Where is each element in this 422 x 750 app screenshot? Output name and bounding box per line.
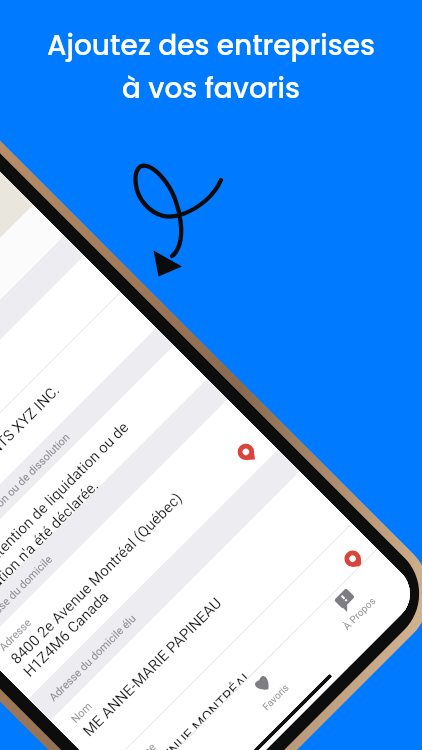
- button[interactable]: Aucune intention de liquidation ou de di…: [0, 338, 225, 622]
- button[interactable]: Nom: [67, 464, 369, 750]
- staticText: Adresse du domicile: [0, 546, 72, 625]
- button[interactable]: Favoris: [228, 625, 339, 736]
- button[interactable]: LES DEVELOPPEMENTS XYZ INC.: [0, 285, 174, 571]
- staticText: LES DEVELOPPEMENTS XYZ INC.: [0, 374, 81, 546]
- staticText: Intention de liquidation ou de dissoluti…: [0, 423, 90, 573]
- staticText: 8400 2e Avenue Montréal (Québec): [24, 482, 203, 661]
- button[interactable]: À Propos: [311, 542, 422, 653]
- staticText: 2E AVENUE MONTRÉAL: [149, 659, 274, 750]
- button[interactable]: Adresse: [120, 517, 406, 750]
- staticText: H1Z4M6 Canada: [37, 581, 129, 674]
- button[interactable]: Nom: [176, 573, 422, 750]
- staticText: Adresse du domicile élu: [64, 605, 156, 697]
- staticText: Nom: [86, 693, 112, 719]
- button[interactable]: Recherche: [145, 709, 255, 750]
- button[interactable]: Voir sur la carte: [249, 431, 279, 461]
- staticText: ME ANNE-MARIE PAPINEAU: [96, 587, 243, 733]
- button[interactable]: Voir sur la carte: [356, 538, 385, 567]
- staticText: Aucune intention de liquidation ou de di…: [0, 383, 190, 611]
- staticText: Favoris: [277, 674, 309, 706]
- staticText: à vos favoris: [122, 69, 300, 108]
- staticText: Adresse: [14, 608, 52, 647]
- staticText: Autre adresse: [173, 749, 231, 750]
- button[interactable]: 1165910478: [0, 249, 138, 535]
- staticText: Adresse: [138, 733, 176, 750]
- button[interactable]: Adresse: [0, 392, 296, 693]
- staticText: Ajoutez des entreprises: [47, 26, 375, 65]
- staticText: À Propos: [358, 588, 395, 625]
